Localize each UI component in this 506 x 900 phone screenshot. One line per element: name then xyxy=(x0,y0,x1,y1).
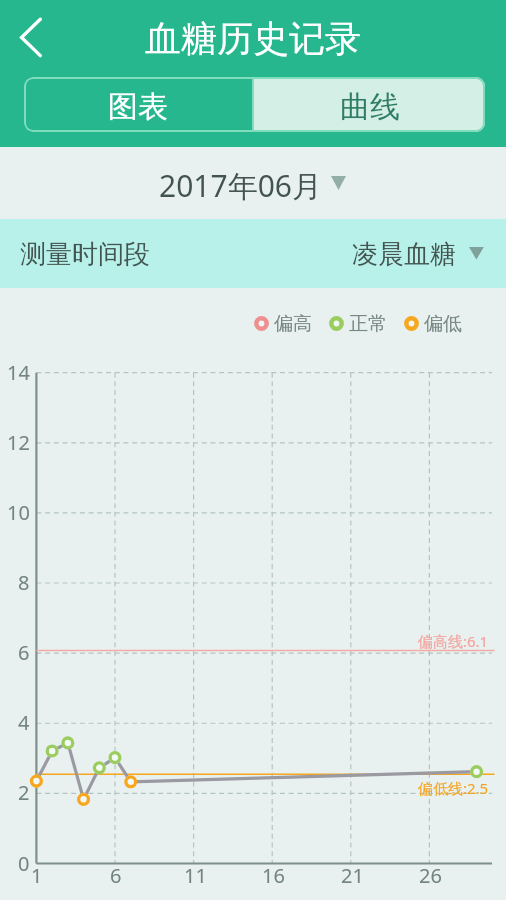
button[interactable]: 2017年06月 xyxy=(155,161,349,210)
staticText: 6 xyxy=(110,862,122,889)
staticText: 1 xyxy=(31,862,43,889)
staticText: 21 xyxy=(341,862,364,889)
staticText: 12 xyxy=(7,429,30,456)
staticText: 偏高 xyxy=(274,312,312,336)
staticText: 图表 xyxy=(108,88,168,126)
staticText: 血糖历史记录 xyxy=(145,16,361,61)
button[interactable]: Back xyxy=(0,0,66,66)
staticText: 16 xyxy=(262,862,285,889)
staticText: 8 xyxy=(18,569,30,596)
button[interactable]: 测量时间段 xyxy=(0,219,506,288)
staticText: 4 xyxy=(18,709,30,736)
staticText: 11 xyxy=(184,862,207,889)
staticText: 0 xyxy=(18,850,30,877)
staticText: 偏高线:6.1 xyxy=(418,631,489,651)
staticText: 10 xyxy=(7,499,30,526)
staticText: 偏低 xyxy=(424,312,462,336)
button[interactable]: 曲线 xyxy=(254,77,485,132)
button[interactable]: 图表 xyxy=(24,77,252,132)
staticText: 正常 xyxy=(349,312,387,336)
staticText: 曲线 xyxy=(340,88,400,126)
staticText: 偏低线:2.5 xyxy=(418,778,489,798)
staticText: 26 xyxy=(419,862,442,889)
staticText: 2 xyxy=(18,779,30,806)
staticText: 2017年06月 xyxy=(159,165,322,206)
staticText: 6 xyxy=(18,639,30,666)
staticText: 14 xyxy=(7,359,30,386)
staticText: 凌晨血糖 xyxy=(352,238,456,271)
staticText: 测量时间段 xyxy=(20,238,150,271)
